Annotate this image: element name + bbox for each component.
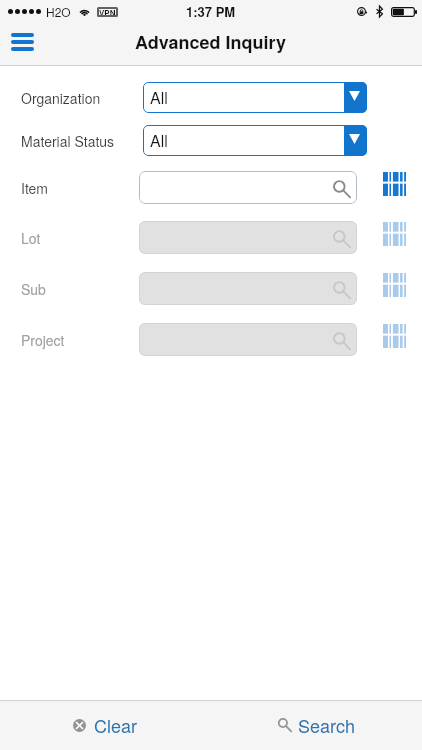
- button[interactable]: Search: [211, 700, 422, 750]
- staticText: Item: [21, 178, 49, 198]
- button[interactable]: Scan barcode: [383, 172, 406, 196]
- button[interactable]: Scan barcode: [383, 273, 406, 297]
- staticText: Organization: [21, 88, 101, 108]
- button[interactable]: Clear: [0, 700, 211, 750]
- staticText: Material Status: [21, 131, 115, 151]
- button[interactable]: All: [143, 82, 367, 113]
- button[interactable]: All: [143, 125, 367, 156]
- staticText: All: [150, 86, 168, 109]
- staticText: H2O: [46, 3, 71, 20]
- staticText: Lot: [21, 228, 41, 248]
- staticText: Clear: [94, 712, 138, 738]
- staticText: Project: [21, 330, 65, 350]
- staticText: Sub: [21, 279, 46, 299]
- staticText: VPN: [99, 7, 116, 17]
- button[interactable]: [139, 171, 357, 204]
- button[interactable]: [139, 272, 357, 305]
- button[interactable]: [139, 221, 357, 254]
- button[interactable]: Menu: [2, 25, 42, 59]
- button[interactable]: [139, 323, 357, 356]
- staticText: Search: [298, 712, 355, 738]
- button[interactable]: Scan barcode: [383, 324, 406, 348]
- staticText: All: [150, 129, 168, 152]
- button[interactable]: Scan barcode: [383, 222, 406, 246]
- staticText: 1:37 PM: [186, 2, 236, 21]
- staticText: Advanced Inquiry: [135, 29, 287, 55]
